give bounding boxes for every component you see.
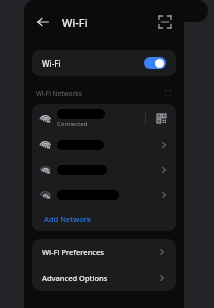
staticText: Add Network	[44, 214, 92, 224]
staticText: Wi-Fi	[42, 58, 61, 69]
button[interactable]: Share network QR code	[154, 111, 168, 125]
button[interactable]: Add Network	[32, 207, 176, 231]
button[interactable]	[32, 157, 176, 182]
staticText: Wi-Fi	[62, 15, 88, 30]
button[interactable]: Connected	[32, 104, 176, 132]
staticText: Wi-Fi Preferences	[42, 247, 104, 257]
button[interactable]: Advanced Options	[32, 265, 176, 291]
staticText: Advanced Options	[42, 273, 108, 283]
button[interactable]	[32, 132, 176, 157]
button[interactable]: Scan QR code	[154, 11, 176, 33]
staticText: Connected	[57, 120, 88, 128]
button[interactable]: Wi-Fi Preferences	[32, 239, 176, 265]
staticText: Wi-Fi Networks	[36, 89, 82, 98]
button[interactable]: Back	[32, 11, 54, 33]
button[interactable]	[32, 182, 176, 207]
button[interactable]: Wi-Fi	[32, 50, 176, 76]
